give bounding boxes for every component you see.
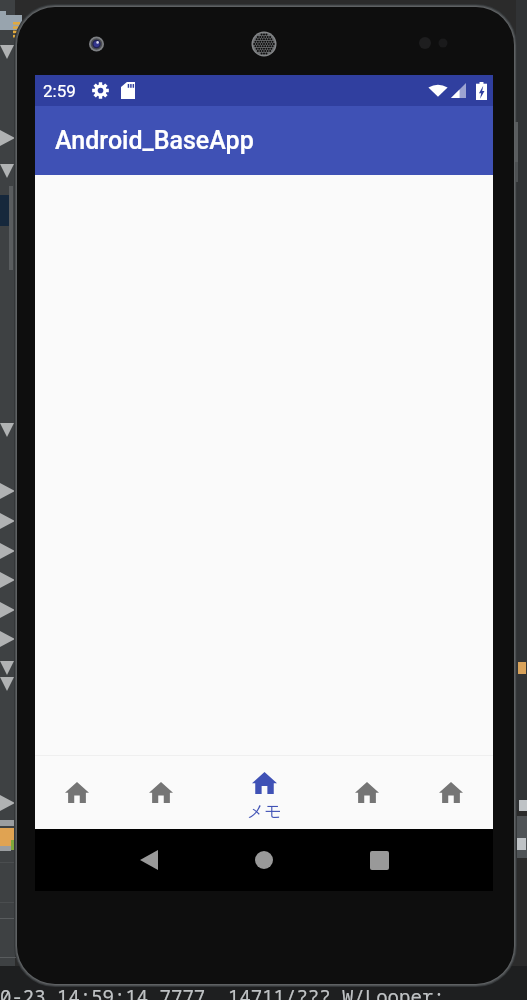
button[interactable]: Recent apps xyxy=(343,829,415,891)
button[interactable]: メモ xyxy=(203,756,325,829)
staticText: Android_BaseApp xyxy=(55,126,254,155)
staticText: 2:59 xyxy=(43,81,76,101)
button[interactable]: Home xyxy=(409,756,493,829)
button[interactable]: Home xyxy=(35,756,119,829)
button[interactable]: Home xyxy=(325,756,409,829)
button[interactable]: Home xyxy=(228,829,300,891)
button[interactable]: Home xyxy=(119,756,203,829)
button[interactable]: Back xyxy=(113,829,185,891)
staticText: 0-23 14:59:14 7777 14711/??? W/Looper: xyxy=(0,984,445,1000)
staticText: メモ xyxy=(247,801,282,822)
